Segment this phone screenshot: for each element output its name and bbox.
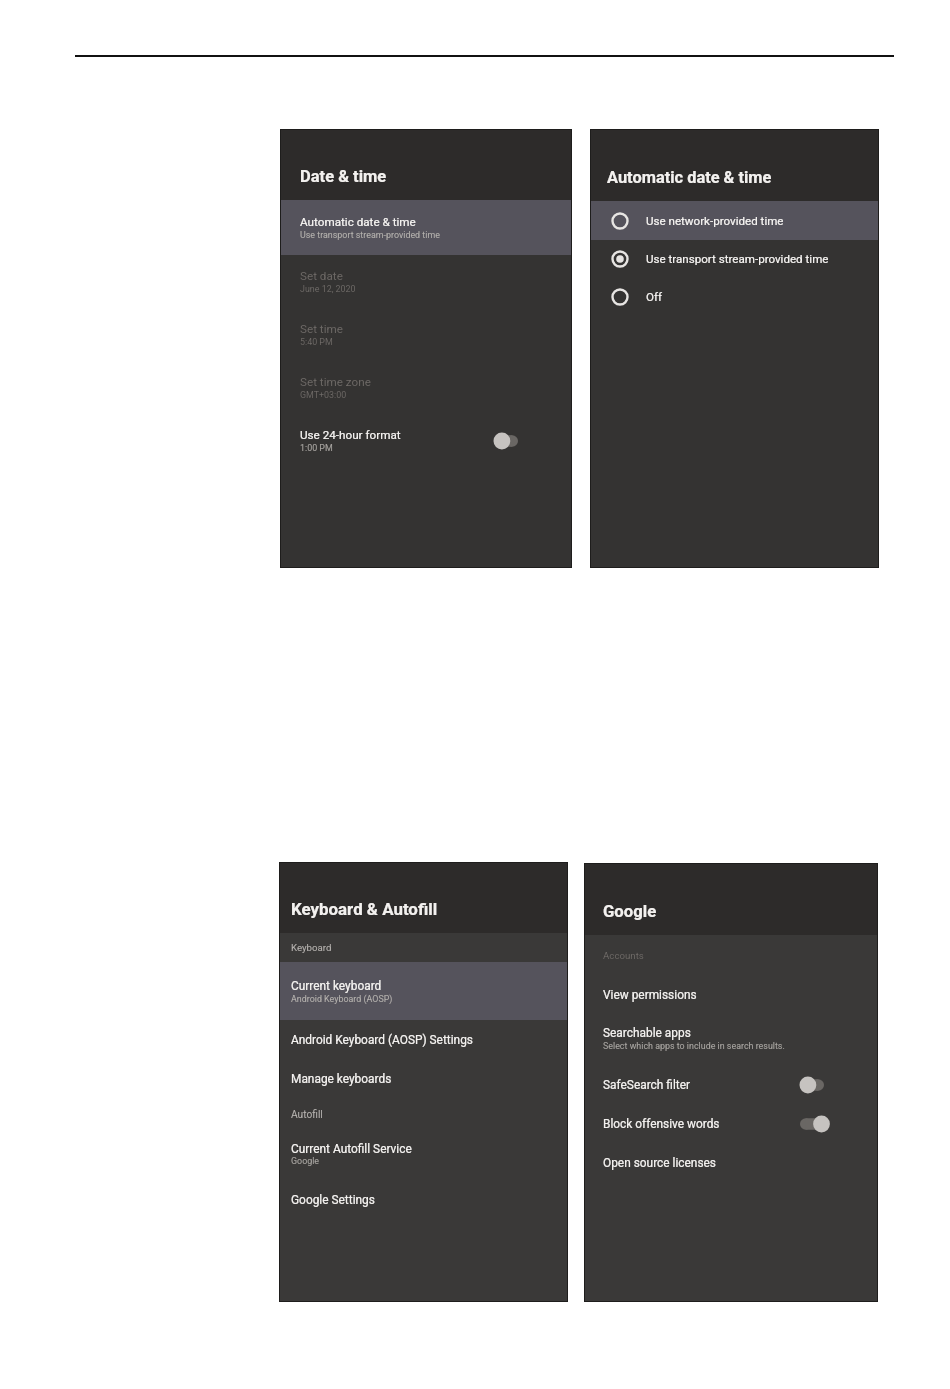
button[interactable]: Current Autofill Service <box>280 1131 567 1176</box>
button[interactable]: Autofill <box>280 1098 567 1131</box>
staticText: Accounts <box>603 950 644 961</box>
staticText: Automatic date & time <box>607 168 772 187</box>
button[interactable]: SafeSearch filter <box>585 1064 877 1105</box>
staticText: Block offensive words <box>603 1117 720 1131</box>
staticText: Select which apps to include in search r… <box>603 1041 785 1051</box>
button[interactable]: Google Settings <box>280 1176 567 1223</box>
staticText: Open source licenses <box>603 1156 717 1170</box>
button[interactable]: Set time <box>281 308 571 361</box>
button[interactable]: Manage keyboards <box>280 1060 567 1098</box>
staticText: Off <box>646 290 663 304</box>
staticText: Set time <box>300 322 343 336</box>
staticText: Set date <box>300 269 343 283</box>
staticText: Google <box>291 1156 320 1166</box>
staticText: Android Keyboard (AOSP) Settings <box>291 1033 473 1047</box>
staticText: Current Autofill Service <box>291 1142 412 1156</box>
button[interactable]: Block offensive words <box>585 1105 877 1143</box>
staticText: Automatic date & time <box>300 215 416 229</box>
button[interactable]: Open source licenses <box>585 1143 877 1183</box>
button[interactable]: Off <box>591 278 878 316</box>
staticText: Searchable apps <box>603 1026 691 1040</box>
button[interactable]: Automatic date & time <box>281 200 571 255</box>
button[interactable]: Use 24-hour format <box>281 414 571 467</box>
staticText: Set time zone <box>300 375 371 389</box>
staticText: Use transport stream-provided time <box>300 230 440 240</box>
staticText: Keyboard <box>291 942 332 953</box>
staticText: Manage keyboards <box>291 1072 392 1086</box>
button[interactable]: Accounts <box>585 935 877 976</box>
staticText: June 12, 2020 <box>300 284 356 294</box>
button[interactable]: Switch off <box>800 1076 832 1094</box>
button[interactable]: Use transport stream-provided time <box>591 240 878 278</box>
staticText: SafeSearch filter <box>603 1078 691 1092</box>
staticText: 1:00 PM <box>300 443 333 453</box>
button[interactable]: Current keyboard <box>280 962 567 1020</box>
staticText: 5:40 PM <box>300 337 333 347</box>
button[interactable]: Set date <box>281 255 571 308</box>
button[interactable]: Switch off <box>494 432 526 450</box>
staticText: Android Keyboard (AOSP) <box>291 994 393 1004</box>
staticText: View permissions <box>603 988 697 1002</box>
button[interactable]: Set time zone <box>281 361 571 414</box>
staticText: Keyboard & Autofill <box>291 899 438 919</box>
button[interactable]: Searchable apps <box>585 1013 877 1064</box>
staticText: Use network-provided time <box>646 214 784 228</box>
button[interactable]: Android Keyboard (AOSP) Settings <box>280 1020 567 1060</box>
staticText: Google Settings <box>291 1193 375 1207</box>
staticText: Autofill <box>291 1109 323 1121</box>
button[interactable]: Use network-provided time <box>591 201 878 240</box>
button[interactable]: View permissions <box>585 976 877 1013</box>
staticText: Google <box>603 902 657 922</box>
staticText: GMT+03:00 <box>300 390 347 400</box>
staticText: Use 24-hour format <box>300 428 401 442</box>
staticText: Date & time <box>300 167 387 186</box>
button[interactable]: Switch on <box>800 1115 832 1133</box>
staticText: Use transport stream-provided time <box>646 252 829 266</box>
staticText: Current keyboard <box>291 979 382 993</box>
button[interactable]: Keyboard <box>280 933 567 962</box>
